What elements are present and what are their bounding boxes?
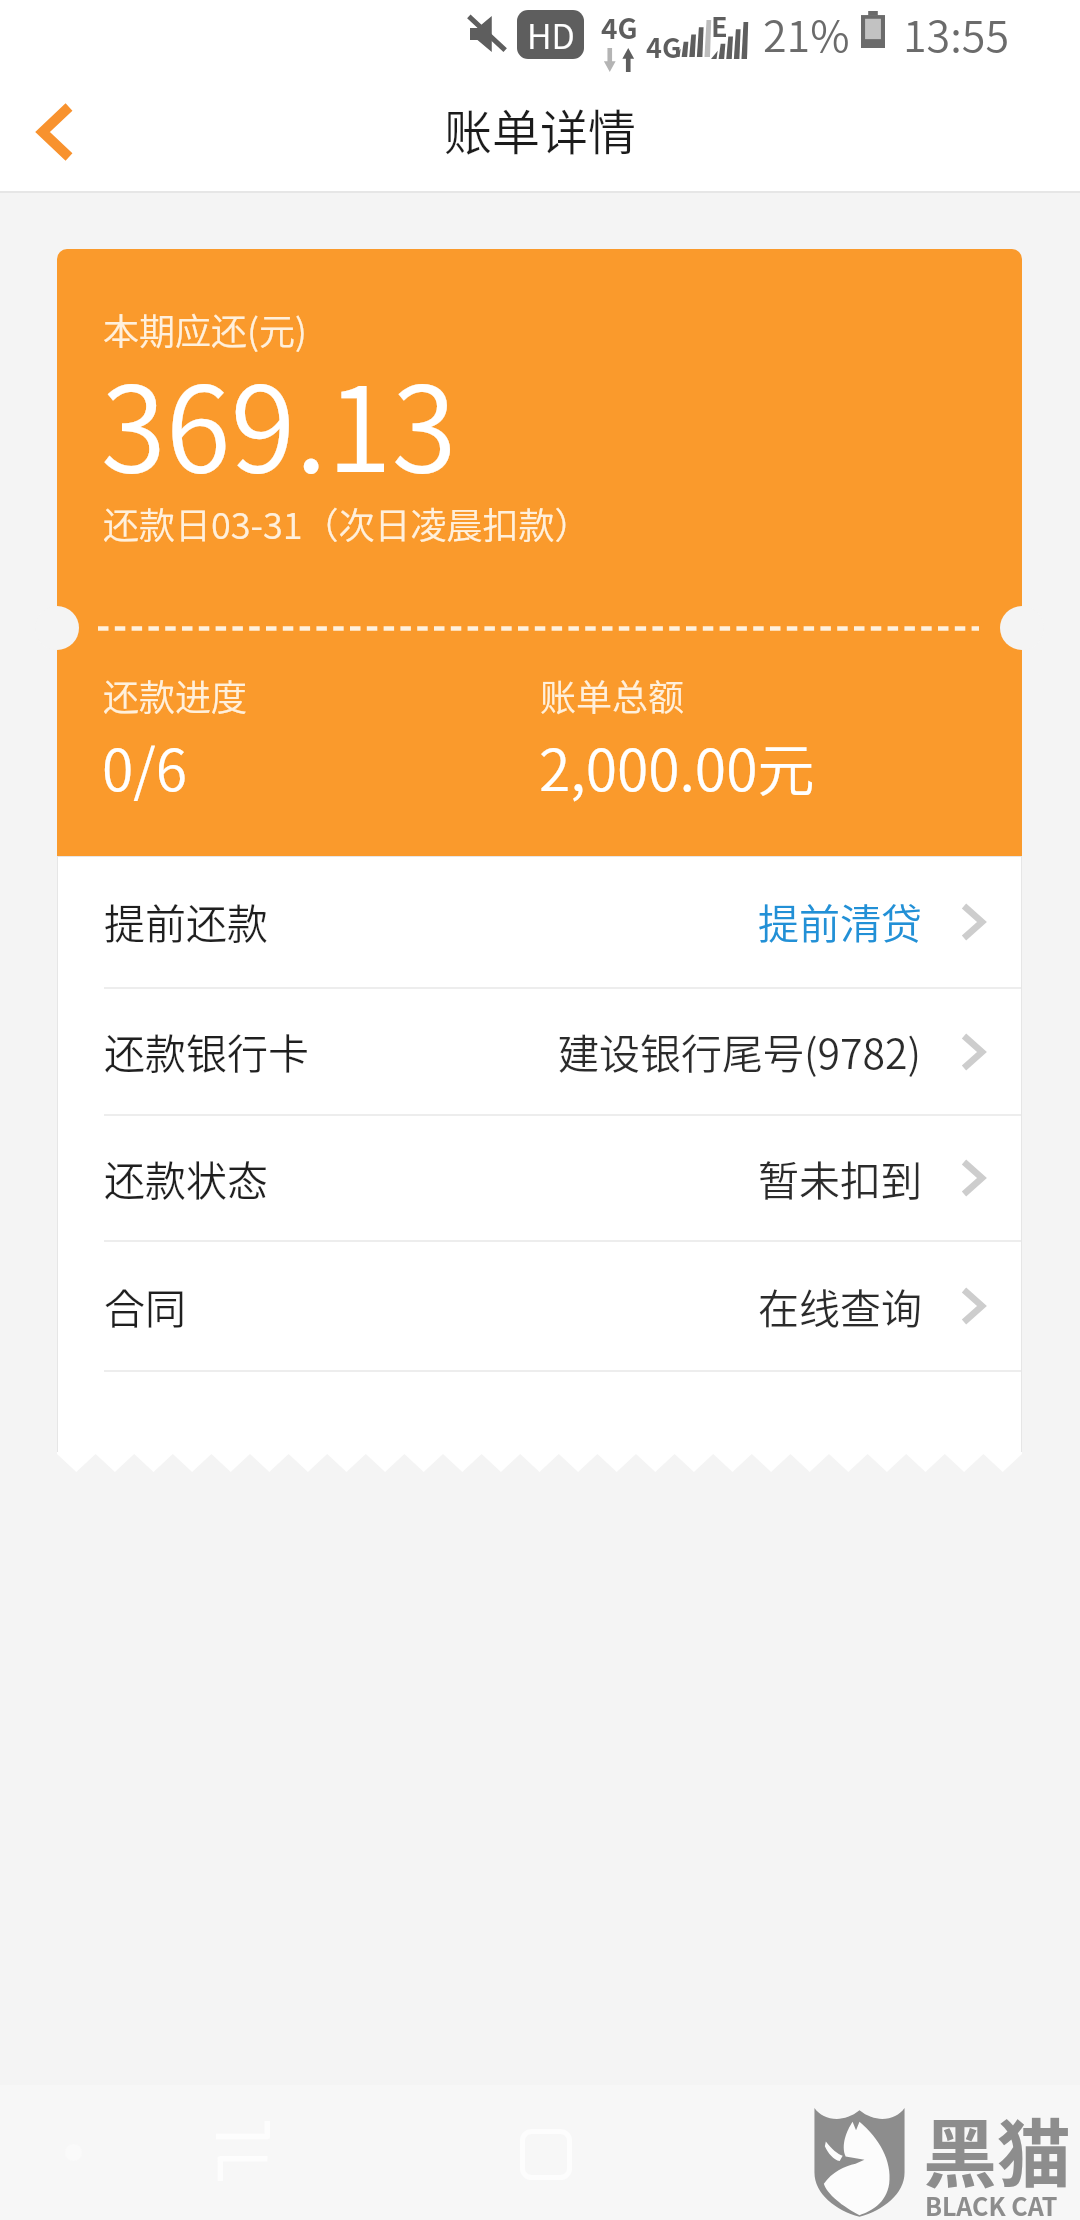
staticText: 还款进度: [103, 669, 248, 721]
staticText: 账单总额: [540, 669, 685, 721]
button[interactable]: 还款银行卡: [57, 989, 1022, 1116]
staticText: 建设银行尾号(9782): [558, 1021, 922, 1080]
staticText: HD: [527, 10, 575, 59]
staticText: 还款日03-31（次日凌晨扣款）: [103, 497, 591, 549]
staticText: 13:55: [903, 2, 1009, 64]
staticText: E: [711, 6, 728, 45]
staticText: 0/6: [102, 725, 187, 808]
staticText: 还款银行卡: [104, 1021, 309, 1080]
staticText: 还款状态: [104, 1148, 268, 1207]
button[interactable]: 提前还款: [57, 856, 1022, 989]
staticText: 4G: [601, 7, 638, 48]
staticText: 账单详情: [444, 94, 637, 164]
staticText: 4G: [646, 27, 682, 66]
staticText: 暂未扣到: [758, 1148, 922, 1207]
staticText: 合同: [104, 1276, 186, 1335]
staticText: 本期应还(元): [103, 303, 307, 355]
button[interactable]: Back: [0, 75, 108, 192]
staticText: 21%: [763, 2, 850, 64]
staticText: 在线查询: [758, 1276, 922, 1335]
staticText: 2,000.00元: [539, 725, 815, 808]
staticText: BLACK CAT: [925, 2187, 1058, 2220]
staticText: 提前清贷: [758, 891, 922, 950]
staticText: 提前还款: [104, 891, 268, 950]
staticText: 369.13: [101, 335, 457, 506]
staticText: 黑猫: [923, 2095, 1071, 2202]
button[interactable]: 还款状态: [57, 1116, 1022, 1242]
button[interactable]: 合同: [57, 1242, 1022, 1372]
